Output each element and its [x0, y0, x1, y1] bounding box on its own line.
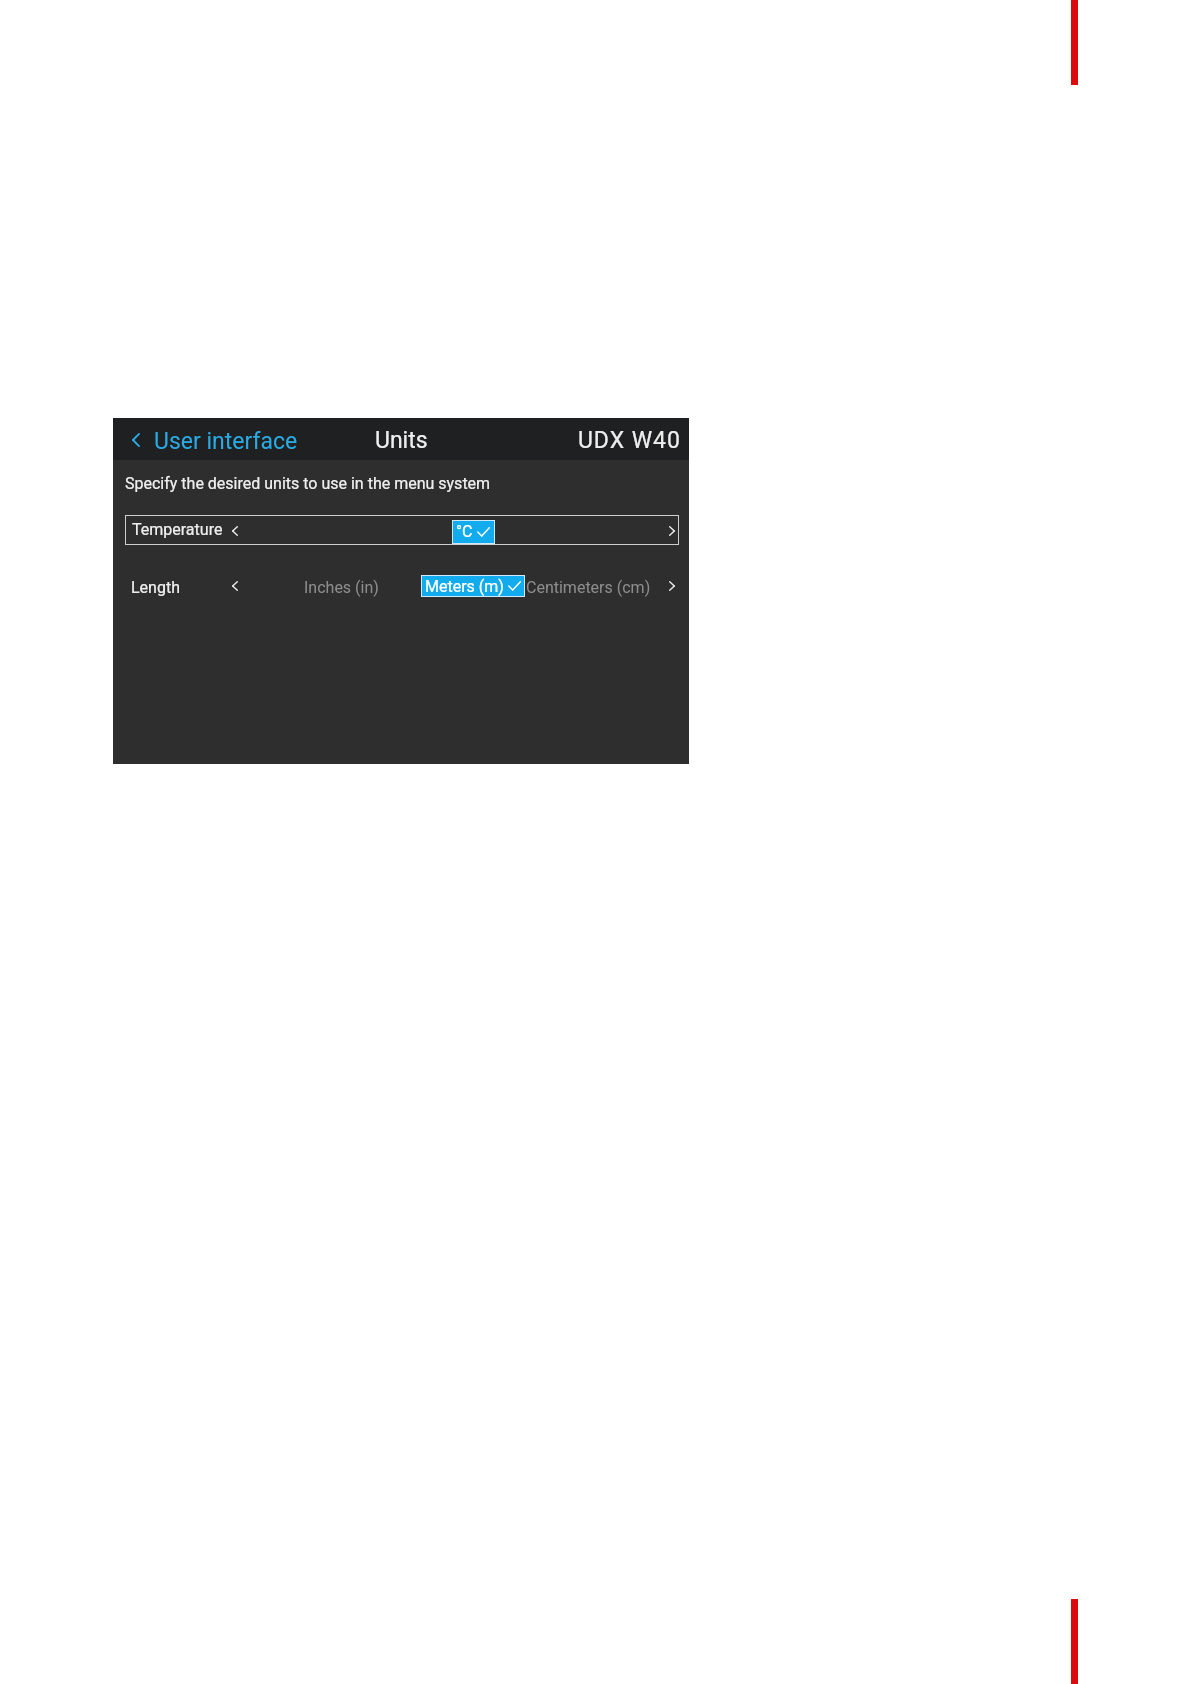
other: Previous temperature unit — [232, 526, 238, 536]
other: Next temperature unit — [669, 526, 675, 536]
staticText: Centimeters (cm) — [526, 578, 651, 597]
staticText: UDX W40 — [578, 427, 681, 454]
button[interactable]: Meters (m) — [421, 575, 525, 597]
staticText: °C — [456, 522, 473, 541]
button[interactable]: °C — [452, 520, 495, 544]
other: Previous length unit — [232, 581, 238, 591]
other: Next length unit — [669, 581, 675, 591]
staticText: User interface — [154, 428, 298, 455]
staticText: Meters (m) — [425, 577, 504, 596]
staticText: Temperature — [132, 520, 223, 539]
button[interactable]: Back — [127, 418, 317, 460]
staticText: Length — [131, 578, 180, 597]
staticText: Inches (in) — [304, 578, 379, 597]
button[interactable]: Temperature — [125, 515, 679, 545]
button[interactable]: Length — [125, 573, 679, 603]
other: Back — [132, 433, 140, 447]
staticText: Specify the desired units to use in the … — [125, 474, 491, 493]
staticText: Units — [375, 427, 428, 454]
